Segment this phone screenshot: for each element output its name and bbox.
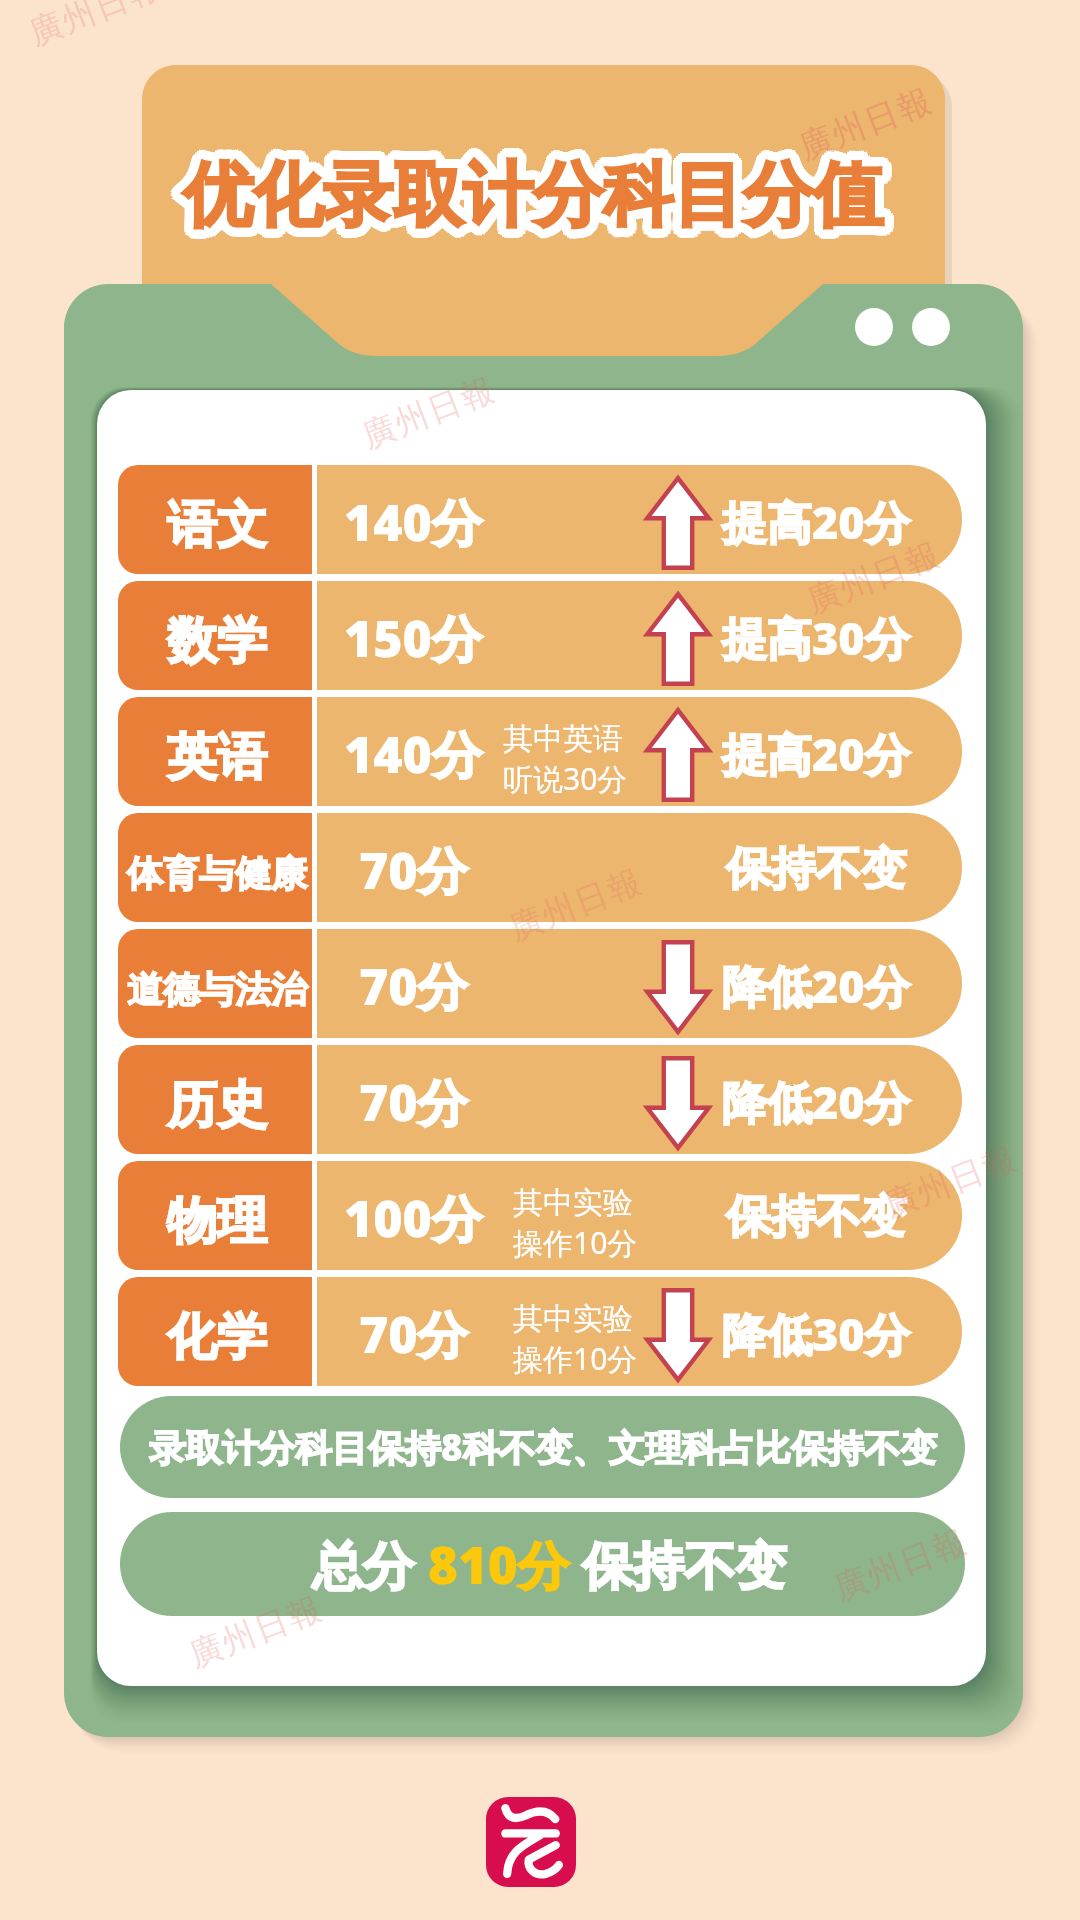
staticText: 优化录取计分科目分值 xyxy=(186,149,886,237)
staticText: 降低20分 xyxy=(722,955,910,1016)
staticText: 优化录取计分科目分值 xyxy=(180,155,880,243)
staticText: 70分 xyxy=(359,1300,468,1368)
staticText: 优化录取计分科目分值 xyxy=(187,150,887,238)
staticText: 其中实验 操作10分 xyxy=(513,1300,638,1379)
staticText: 优化录取计分科目分值 xyxy=(174,154,874,242)
staticText: 语文 xyxy=(167,494,267,557)
staticText: 优化录取计分科目分值 xyxy=(183,152,883,240)
staticText: 优化录取计分科目分值 xyxy=(181,148,881,236)
staticText: 优化录取计分科目分值 xyxy=(183,161,883,249)
button[interactable]: 优化录取计分科目分值 xyxy=(131,71,934,320)
staticText: 100分 xyxy=(344,1184,482,1252)
staticText: 优化录取计分科目分值 xyxy=(185,143,885,231)
staticText: 廣州日報 xyxy=(182,1587,328,1677)
button[interactable]: 化学 xyxy=(118,1277,962,1386)
button[interactable]: 数学 xyxy=(118,581,962,690)
staticText: 优化录取计分科目分值 xyxy=(174,152,874,240)
button[interactable]: 历史 xyxy=(118,1045,962,1154)
button[interactable]: 录取计分科目保持8科不变、文理科占比保持不变 xyxy=(120,1396,965,1498)
staticText: 录取计分科目保持8科不变、文理科占比保持不变 xyxy=(149,1422,937,1472)
staticText: 优化录取计分科目分值 xyxy=(188,144,888,232)
staticText: 廣州日報 xyxy=(792,79,938,169)
staticText: 优化录取计分科目分值 xyxy=(182,148,882,236)
staticText: 英语 xyxy=(167,726,267,789)
staticText: 提高20分 xyxy=(722,723,910,784)
button[interactable]: 体育与健康 xyxy=(118,813,962,922)
staticText: 优化录取计分科目分值 xyxy=(183,143,883,231)
staticText: 道德与法治 xyxy=(127,967,307,1012)
staticText: 优化录取计分科目分值 xyxy=(181,143,881,231)
staticText: 优化录取计分科目分值 xyxy=(189,146,889,234)
staticText: 提高30分 xyxy=(722,607,910,668)
staticText: 优化录取计分科目分值 xyxy=(191,148,891,236)
staticText: 优化录取计分科目分值 xyxy=(177,146,877,234)
staticText: 保持不变 xyxy=(569,1529,787,1599)
staticText: 优化录取计分科目分值 xyxy=(175,157,875,245)
staticText: 810分 xyxy=(428,1529,569,1599)
staticText: 优化录取计分科目分值 xyxy=(187,155,887,243)
staticText: 廣州日報 xyxy=(355,368,501,458)
staticText: 140分 xyxy=(344,488,482,556)
staticText: 优化录取计分科目分值 xyxy=(186,148,886,236)
staticText: 优化录取计分科目分值 xyxy=(179,154,879,242)
staticText: 优化录取计分科目分值 xyxy=(187,151,887,239)
button[interactable]: 总分 xyxy=(120,1512,965,1616)
staticText: 优化录取计分科目分值 xyxy=(179,152,879,240)
staticText: 优化录取计分科目分值 xyxy=(183,148,883,236)
staticText: 降低30分 xyxy=(722,1303,910,1364)
staticText: 优化录取计分科目分值 xyxy=(185,148,885,236)
staticText: 数学 xyxy=(167,610,267,673)
staticText: 物理 xyxy=(167,1190,267,1253)
staticText: 优化录取计分科目分值 xyxy=(174,150,874,238)
staticText: 保持不变 xyxy=(726,1189,906,1246)
staticText: 优化录取计分科目分值 xyxy=(192,152,892,240)
staticText: 优化录取计分科目分值 xyxy=(179,160,879,248)
staticText: 优化录取计分科目分值 xyxy=(186,155,886,243)
staticText: 提高20分 xyxy=(722,491,910,552)
staticText: 优化录取计分科目分值 xyxy=(191,157,891,245)
button[interactable]: 英语 xyxy=(118,697,962,806)
staticText: 化学 xyxy=(167,1306,267,1369)
staticText: 优化录取计分科目分值 xyxy=(181,156,881,244)
staticText: 优化录取计分科目分值 xyxy=(189,158,889,246)
staticText: 廣州日報 xyxy=(827,1520,973,1610)
staticText: 优化录取计分科目分值 xyxy=(177,158,877,246)
staticText: 优化录取计分科目分值 xyxy=(183,156,883,244)
staticText: 廣州日報 xyxy=(800,533,946,623)
staticText: 廣州日報 xyxy=(877,1137,1023,1227)
staticText: 优化录取计分科目分值 xyxy=(185,161,885,249)
button[interactable]: 道德与法治 xyxy=(118,929,962,1038)
staticText: 优化录取计分科目分值 xyxy=(187,154,887,242)
staticText: 优化录取计分科目分值 xyxy=(192,154,892,242)
staticText: 体育与健康 xyxy=(127,851,307,896)
staticText: 优化录取计分科目分值 xyxy=(180,156,880,244)
staticText: 降低20分 xyxy=(722,1071,910,1132)
staticText: 廣州日報 xyxy=(22,0,168,55)
staticText: 优化录取计分科目分值 xyxy=(181,161,881,249)
staticText: 优化录取计分科目分值 xyxy=(179,153,879,241)
staticText: 优化录取计分科目分值 xyxy=(180,149,880,237)
staticText: 优化录取计分科目分值 xyxy=(192,150,892,238)
staticText: 70分 xyxy=(359,952,468,1020)
staticText: 优化录取计分科目分值 xyxy=(179,149,879,237)
staticText: 其中英语 听说30分 xyxy=(503,720,628,799)
staticText: 优化录取计分科目分值 xyxy=(179,144,879,232)
staticText: 140分 xyxy=(344,720,482,788)
staticText: 总分 xyxy=(312,1529,428,1599)
staticText: 历史 xyxy=(167,1074,267,1137)
staticText: 优化录取计分科目分值 xyxy=(187,152,887,240)
staticText: 150分 xyxy=(344,604,482,672)
staticText: 优化录取计分科目分值 xyxy=(188,160,888,248)
button[interactable]: 语文 xyxy=(118,465,962,574)
staticText: 优化录取计分科目分值 xyxy=(184,156,884,244)
staticText: 其中实验 操作10分 xyxy=(513,1184,638,1263)
staticText: 优化录取计分科目分值 xyxy=(179,150,879,238)
staticText: 优化录取计分科目分值 xyxy=(175,148,875,236)
staticText: 优化录取计分科目分值 xyxy=(185,156,885,244)
button[interactable]: 物理 xyxy=(118,1161,962,1270)
staticText: 70分 xyxy=(359,836,468,904)
staticText: 廣州日報 xyxy=(502,860,648,950)
staticText: 保持不变 xyxy=(726,841,906,898)
staticText: 70分 xyxy=(359,1068,468,1136)
button[interactable]: Guangzhou Daily logo xyxy=(486,1797,576,1887)
